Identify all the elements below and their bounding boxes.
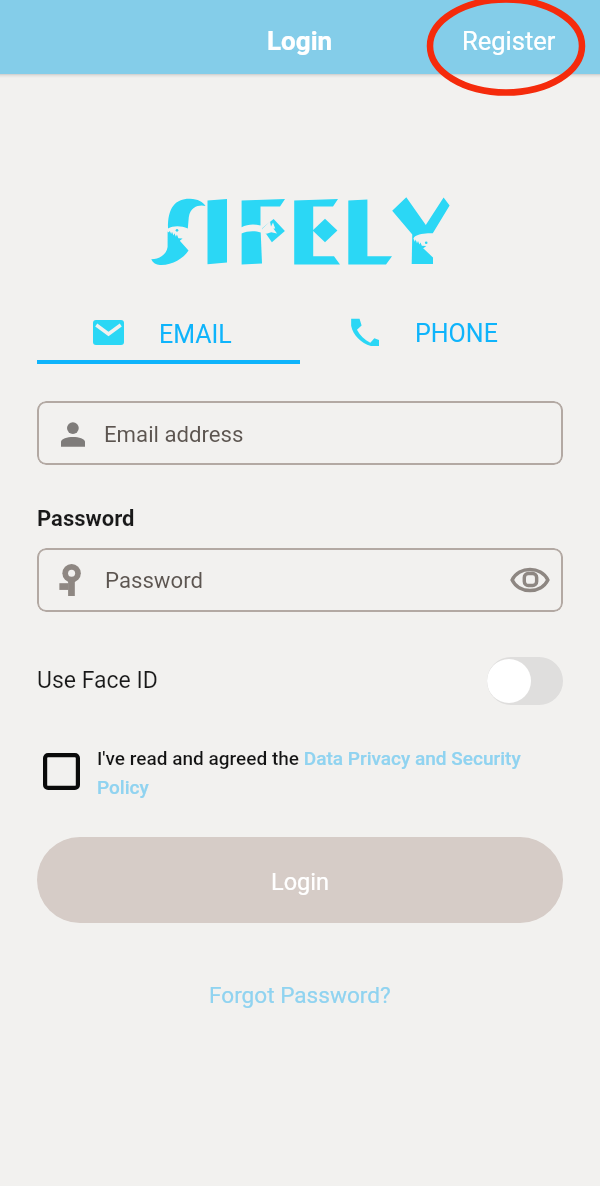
staticText: Password	[37, 506, 135, 532]
button[interactable]: Login	[253, 18, 347, 64]
button[interactable]: Email address	[37, 401, 563, 465]
staticText: Register	[462, 26, 556, 56]
staticText: I've read and agreed the Data Privacy an…	[97, 747, 521, 798]
staticText: PHONE	[415, 319, 498, 348]
button[interactable]: Show password	[502, 552, 558, 608]
staticText: Password	[105, 567, 204, 593]
button[interactable]: Forgot Password?	[201, 974, 399, 1016]
button[interactable]: Register	[442, 18, 600, 64]
button[interactable]: EMAIL	[37, 303, 300, 358]
staticText: Email address	[104, 421, 244, 447]
button[interactable]: I've read and agreed the Data Privacy an…	[97, 747, 521, 798]
button[interactable]: Agree to policy checkbox	[43, 753, 80, 790]
button[interactable]: PHONE	[310, 303, 563, 358]
staticText: Login	[271, 868, 329, 896]
staticText: Forgot Password?	[209, 982, 391, 1008]
staticText: Login	[267, 26, 333, 56]
staticText: EMAIL	[159, 320, 232, 349]
button[interactable]: Password	[37, 548, 563, 612]
staticText: Use Face ID	[37, 667, 158, 694]
button[interactable]: Login	[37, 837, 563, 923]
button[interactable]: Use Face ID toggle	[487, 657, 563, 705]
